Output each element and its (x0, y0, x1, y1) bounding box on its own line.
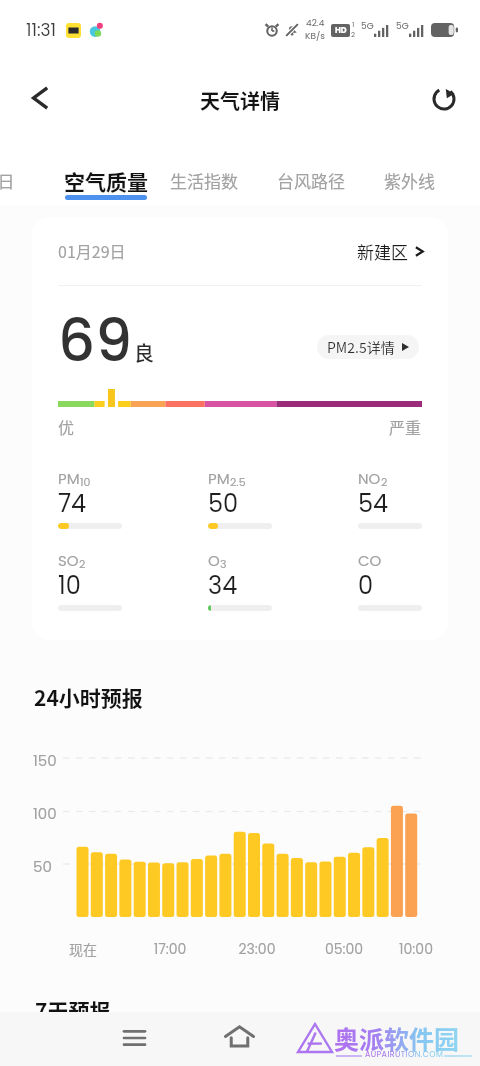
staticText: 10 (80, 474, 91, 489)
staticText: 50 (208, 487, 239, 521)
staticText: 0日 (0, 168, 15, 193)
staticText: 现在 (53, 939, 113, 959)
staticText: 5G (396, 20, 409, 33)
staticText: 奥派软件园 (334, 1020, 460, 1056)
button[interactable]: Back (18, 76, 62, 120)
staticText: O (208, 550, 220, 571)
staticText: 天气详情 (200, 86, 280, 115)
staticText: 74 (58, 487, 87, 521)
staticText: PM2.5详情 (327, 337, 395, 357)
staticText: KB/s (305, 30, 325, 43)
staticText: 34 (208, 569, 238, 603)
staticText: 11:31 (26, 18, 56, 42)
staticText: 150 (33, 750, 57, 771)
staticText: 24小时预报 (34, 682, 143, 712)
button[interactable]: 新建区 (357, 239, 424, 264)
staticText: 2 (351, 30, 356, 40)
staticText: 54 (358, 487, 389, 521)
staticText: 优 (58, 415, 75, 438)
button[interactable]: 0日 (0, 168, 15, 193)
staticText: HD (335, 25, 347, 36)
button[interactable]: 紫外线 (384, 168, 435, 193)
button[interactable]: Refresh (422, 77, 466, 121)
button[interactable]: Recent apps (110, 1014, 158, 1062)
staticText: PM (58, 468, 80, 489)
button[interactable]: 生活指数 (170, 168, 238, 193)
staticText: SO (58, 550, 79, 571)
staticText: 69 (58, 300, 133, 381)
button[interactable]: PM2.5详情 (317, 335, 419, 359)
staticText: 1 (352, 20, 355, 30)
staticText: 17:00 (140, 939, 200, 959)
staticText: CO (358, 550, 382, 571)
staticText: 10:00 (386, 939, 446, 959)
staticText: 05:00 (314, 939, 374, 959)
staticText: 7天预报 (35, 995, 111, 1025)
staticText: 01月29日 (58, 239, 126, 262)
button[interactable]: 台风路径 (277, 168, 345, 193)
staticText: 3 (220, 556, 227, 571)
staticText: 10 (58, 569, 81, 603)
staticText: NO (358, 468, 381, 489)
button[interactable]: Home (215, 1012, 263, 1060)
staticText: 42.4 (306, 17, 325, 30)
staticText: 新建区 (357, 239, 408, 264)
staticText: AUPAIRUTION.COM (365, 1049, 444, 1060)
staticText: 0 (358, 569, 374, 603)
staticText: 2.5 (230, 474, 246, 489)
staticText: 5G (361, 20, 374, 33)
staticText: 2 (381, 474, 388, 489)
staticText: 严重 (389, 415, 422, 438)
staticText: 23:00 (227, 939, 287, 959)
button[interactable]: 空气质量 (64, 166, 148, 201)
staticText: 良 (134, 338, 154, 367)
staticText: PM (208, 468, 230, 489)
staticText: 空气质量 (64, 166, 148, 196)
staticText: 2 (79, 556, 86, 571)
staticText: 50 (33, 856, 52, 877)
staticText: 100 (33, 803, 57, 824)
